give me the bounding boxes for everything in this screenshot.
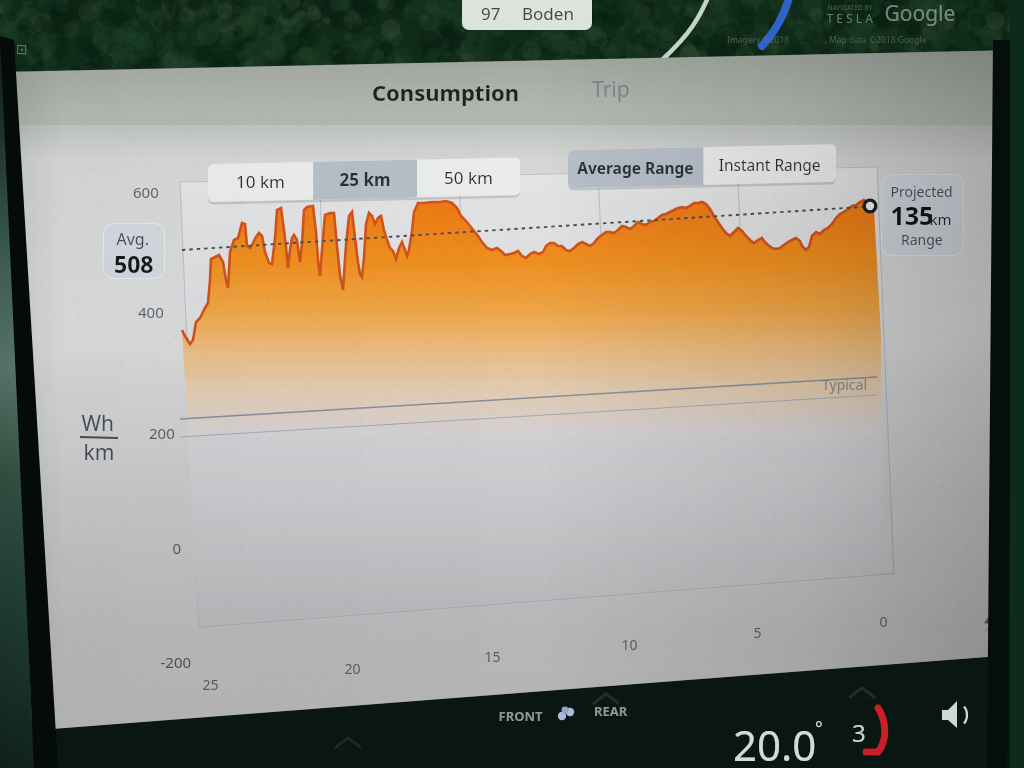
button[interactable]: Average 508 Wh per km	[104, 224, 164, 278]
button[interactable]: Temperature 20.0 degrees	[735, 718, 825, 764]
button[interactable]: Average Range	[568, 150, 704, 188]
button[interactable]: 50 km	[420, 154, 520, 194]
button[interactable]: Volume	[934, 696, 980, 736]
button[interactable]: Rear defrost	[584, 696, 642, 726]
button[interactable]: Fan speed 3	[846, 704, 902, 756]
button[interactable]: Trip	[585, 76, 645, 106]
button[interactable]: Consumption	[372, 78, 522, 108]
button[interactable]: 25 km	[314, 157, 420, 197]
button[interactable]: 97 Boden destination	[462, 0, 592, 31]
button[interactable]: Instant Range	[704, 147, 836, 185]
button[interactable]: Front defrost	[488, 700, 552, 730]
button[interactable]: Projected 135 km range	[882, 175, 963, 255]
button[interactable]: 10 km	[208, 160, 314, 200]
